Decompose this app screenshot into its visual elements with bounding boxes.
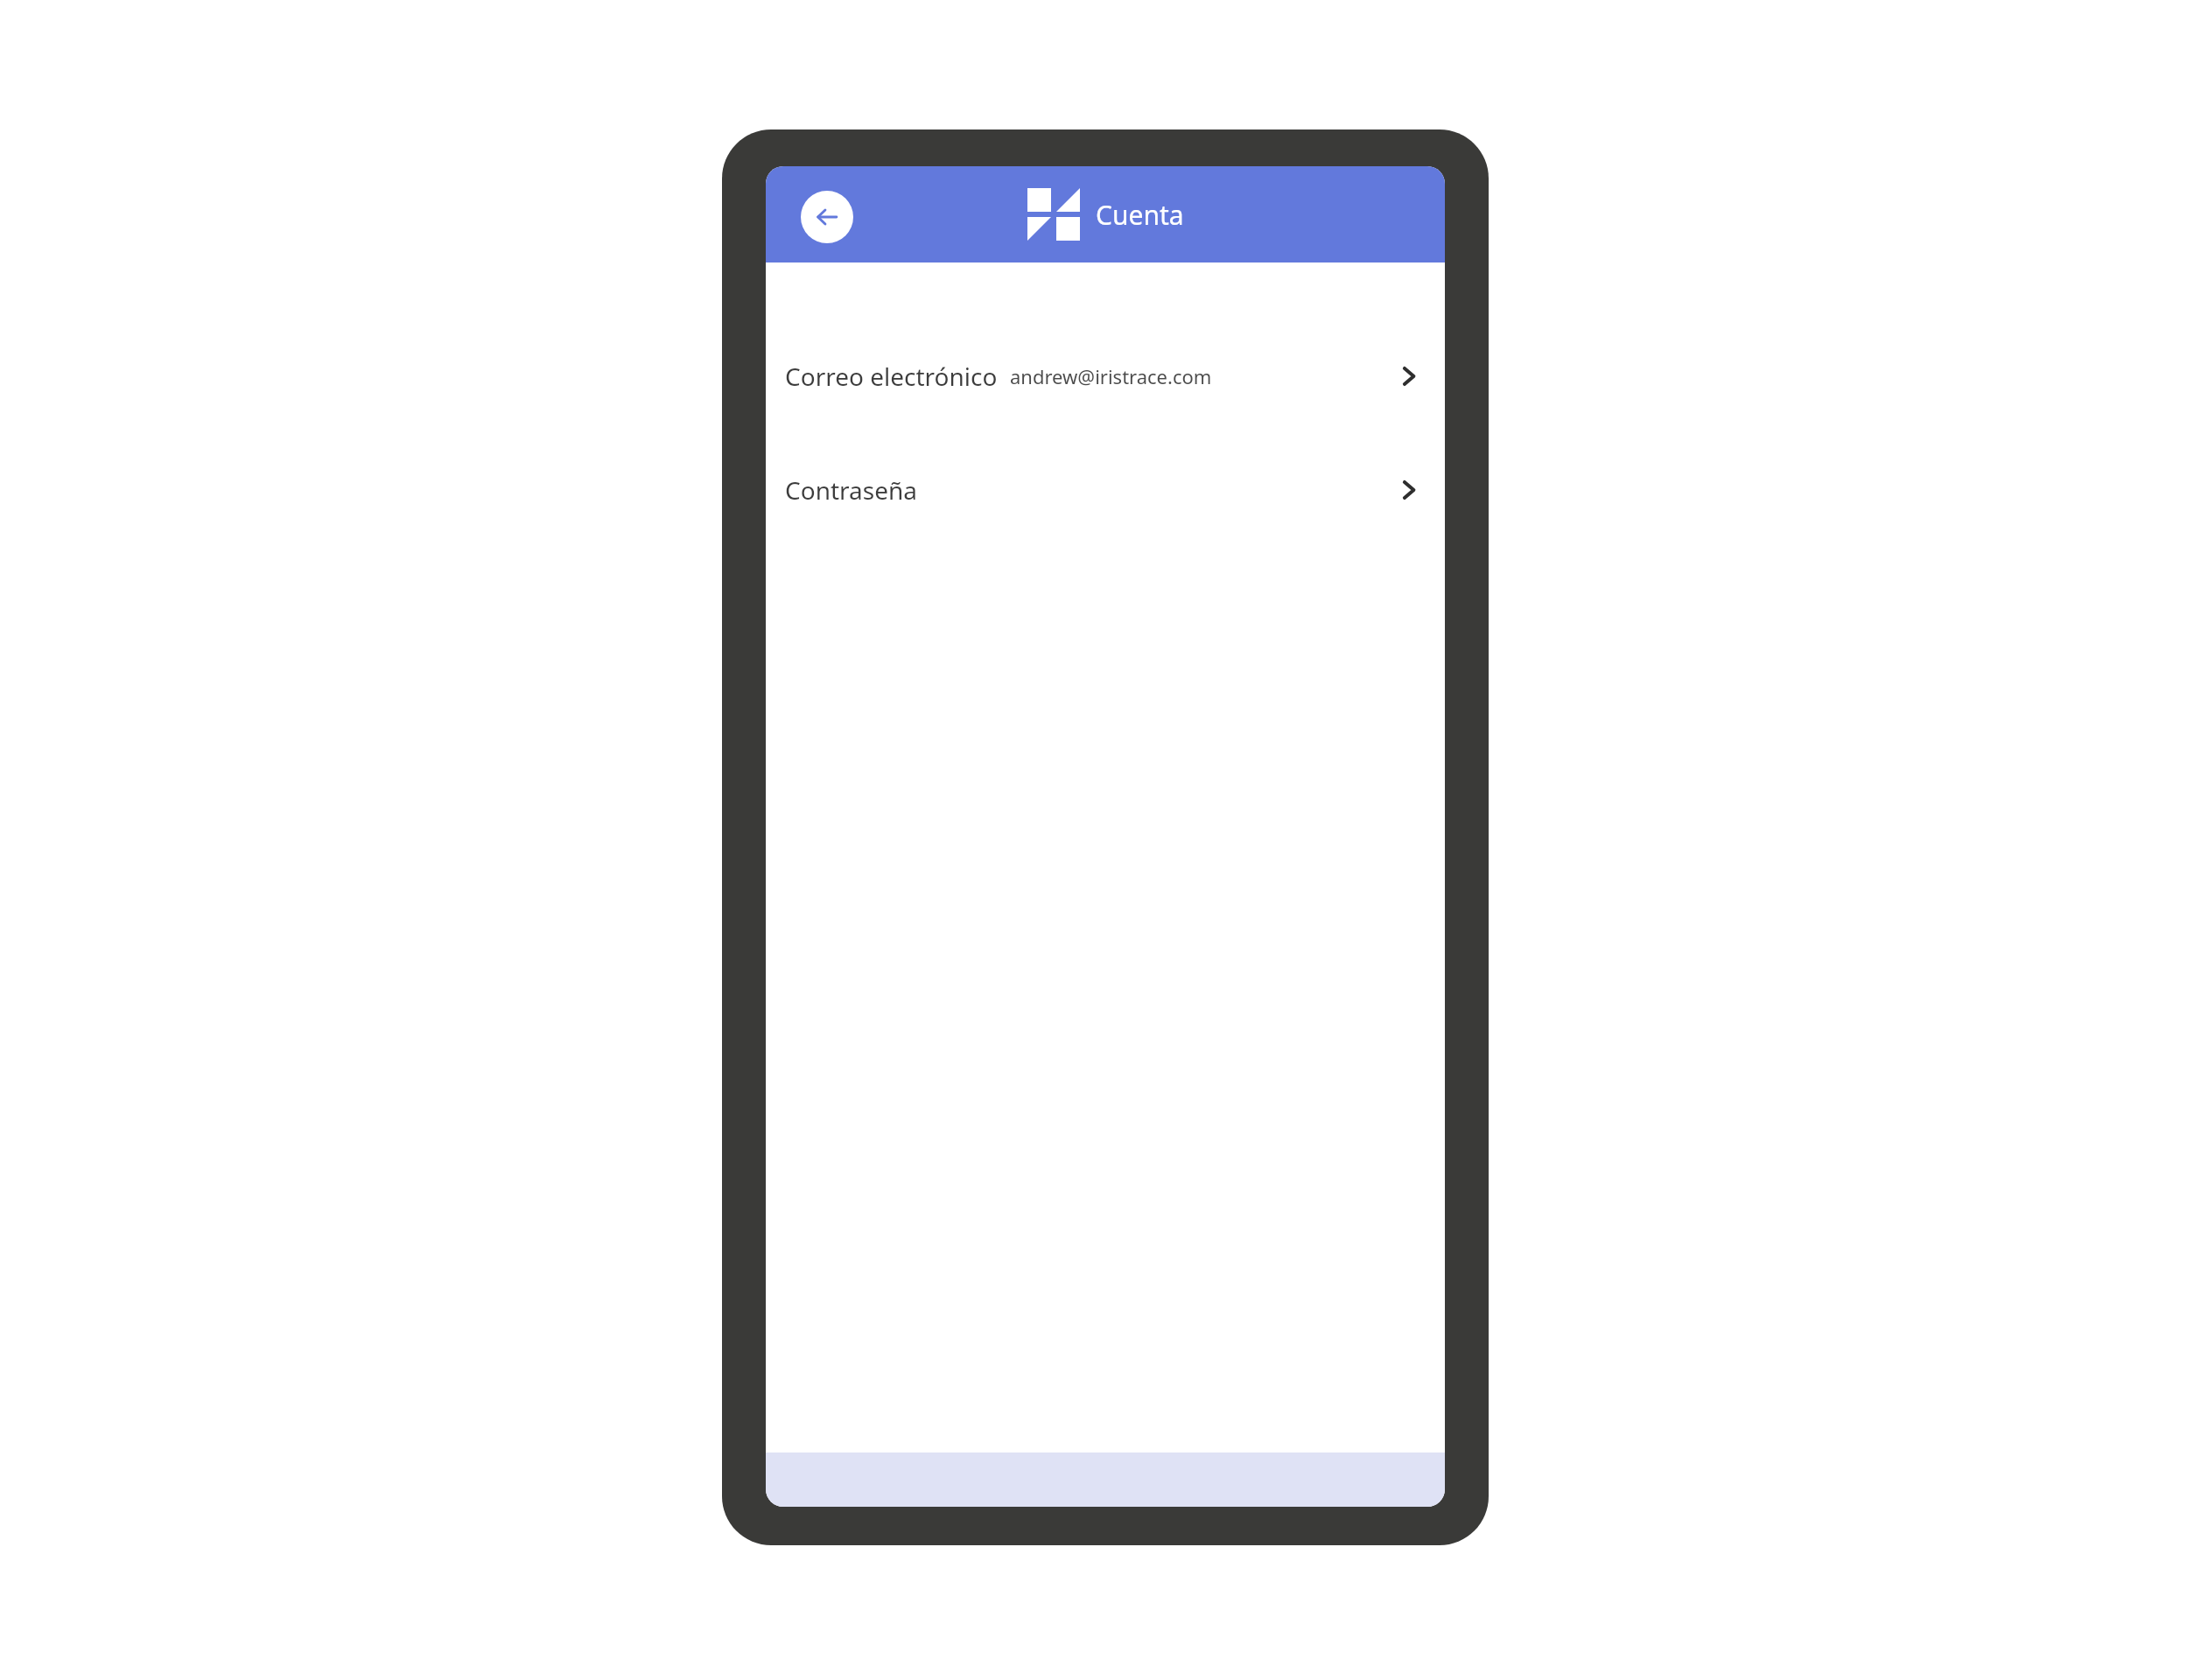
staticText: Contraseña	[785, 473, 917, 507]
button[interactable]: Atrás	[801, 191, 853, 243]
staticText: Cuenta	[1096, 197, 1184, 233]
staticText: andrew@iristrace.com	[1010, 363, 1212, 389]
button[interactable]: Contraseña	[766, 455, 1445, 525]
button[interactable]: Correo electrónico	[766, 341, 1445, 411]
staticText: Correo electrónico	[785, 360, 998, 393]
